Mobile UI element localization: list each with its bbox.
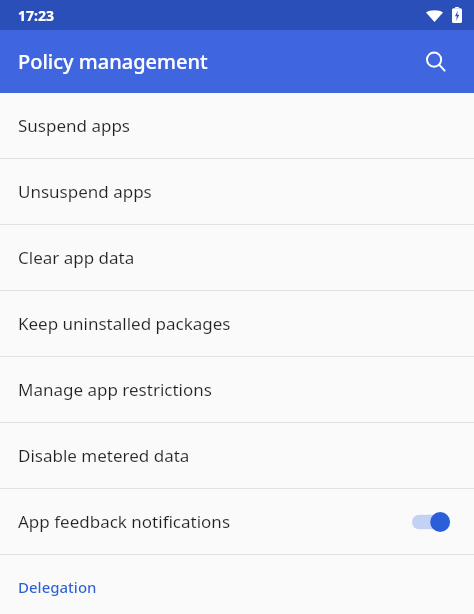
button[interactable]: Clear app data (0, 225, 474, 290)
button[interactable]: Manage app restrictions (0, 357, 474, 422)
button[interactable]: Keep uninstalled packages (0, 291, 474, 356)
button[interactable]: Delegation (0, 555, 474, 614)
staticText: Clear app data (18, 246, 135, 269)
button[interactable]: App feedback notifications (0, 489, 474, 554)
button[interactable]: Suspend apps (0, 93, 474, 158)
staticText: App feedback notifications (18, 510, 412, 533)
staticText: Unsuspend apps (18, 180, 152, 203)
staticText: Keep uninstalled packages (18, 312, 231, 335)
button[interactable]: Disable metered data (0, 423, 474, 488)
staticText: Manage app restrictions (18, 378, 212, 401)
staticText: 17:23 (18, 6, 54, 25)
staticText: Suspend apps (18, 114, 130, 137)
staticText: Disable metered data (18, 444, 190, 467)
button[interactable]: Unsuspend apps (0, 159, 474, 224)
staticText: Delegation (18, 577, 97, 597)
staticText: Policy management (18, 48, 208, 75)
button[interactable]: Search (416, 42, 456, 82)
